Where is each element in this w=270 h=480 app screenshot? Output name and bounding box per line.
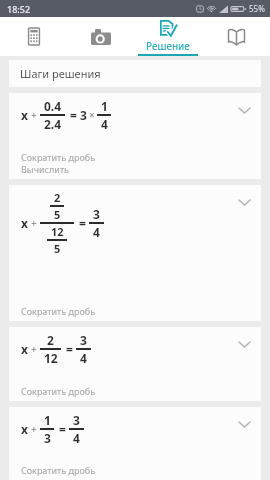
- staticText: Сократить дробь: [21, 151, 96, 163]
- staticText: +: [31, 108, 37, 122]
- staticText: =: [66, 341, 73, 357]
- staticText: 12: [44, 350, 58, 366]
- button[interactable]: Expand step: [236, 102, 252, 118]
- staticText: 4: [93, 224, 100, 240]
- staticText: x: [21, 215, 28, 231]
- button[interactable]: Expand step: [236, 336, 252, 352]
- staticText: 2: [47, 332, 54, 348]
- staticText: 18:52: [7, 3, 31, 15]
- staticText: =: [79, 215, 86, 231]
- staticText: Сократить дробь: [21, 385, 96, 397]
- staticText: +: [31, 342, 37, 356]
- staticText: 1: [44, 412, 51, 428]
- button[interactable]: Expand step: [236, 416, 252, 432]
- staticText: +: [31, 216, 37, 230]
- staticText: 4: [73, 430, 80, 446]
- staticText: 2: [54, 190, 61, 205]
- button[interactable]: x: [9, 407, 261, 480]
- staticText: +: [31, 422, 37, 436]
- staticText: 3: [44, 430, 51, 446]
- staticText: Вычислить: [21, 163, 69, 175]
- button[interactable]: x: [9, 93, 261, 179]
- button[interactable]: Camera: [67, 17, 134, 56]
- staticText: 3: [80, 107, 87, 123]
- staticText: Шаги решения: [20, 66, 101, 81]
- button[interactable]: x: [9, 327, 261, 401]
- staticText: 1: [101, 98, 108, 114]
- staticText: x: [21, 341, 28, 357]
- button[interactable]: x: [9, 185, 261, 321]
- staticText: 3: [93, 206, 100, 222]
- button[interactable]: Решение: [134, 17, 202, 56]
- button[interactable]: Expand step: [236, 194, 252, 210]
- staticText: 3: [73, 412, 80, 428]
- staticText: 5: [54, 207, 61, 222]
- staticText: 12: [51, 224, 64, 239]
- staticText: 4: [101, 116, 108, 132]
- staticText: 5: [54, 241, 61, 256]
- staticText: 0.4: [44, 98, 62, 114]
- staticText: x: [21, 421, 28, 437]
- staticText: =: [70, 107, 77, 123]
- staticText: 55%: [249, 3, 265, 14]
- staticText: 4: [80, 350, 87, 366]
- button[interactable]: Calculator: [0, 17, 67, 56]
- button[interactable]: Dictionary: [202, 17, 270, 56]
- staticText: =: [59, 421, 66, 437]
- staticText: Сократить дробь: [21, 305, 96, 317]
- staticText: ×: [89, 108, 95, 122]
- staticText: 2.4: [44, 116, 62, 132]
- staticText: Сократить дробь: [21, 464, 96, 476]
- staticText: Решение: [146, 39, 190, 53]
- staticText: x: [21, 107, 28, 123]
- staticText: 3: [80, 332, 87, 348]
